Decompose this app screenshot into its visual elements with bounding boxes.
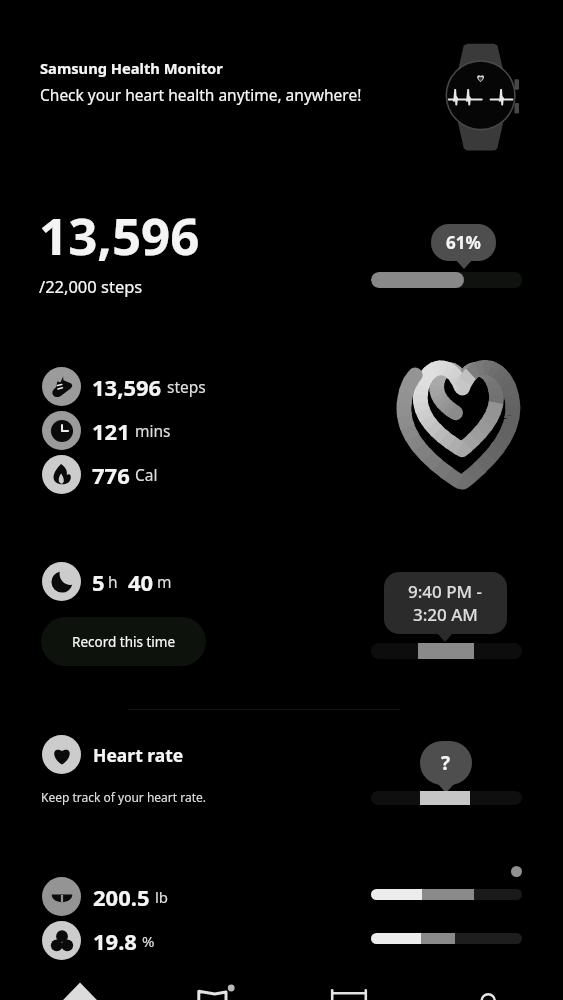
staticText: 19.8 [93, 926, 137, 956]
staticText: Check your heart health anytime, anywher… [40, 84, 362, 105]
staticText: 5 [92, 567, 105, 597]
button[interactable]: Browse [428, 960, 538, 1000]
button[interactable]: Together [159, 960, 269, 1000]
button[interactable]: Home [25, 960, 135, 1000]
staticText: lb [155, 887, 169, 907]
button[interactable]: Record this time [41, 617, 206, 666]
staticText: 13,596 [92, 372, 162, 402]
button[interactable]: 776 [42, 455, 158, 494]
staticText: 40 [128, 567, 154, 597]
staticText: ? [441, 750, 451, 776]
button[interactable]: 61% [431, 224, 496, 261]
staticText: /22,000 steps [39, 275, 143, 297]
staticText: 121 [92, 416, 130, 446]
staticText: steps [167, 376, 206, 397]
staticText: 200.5 [93, 882, 150, 912]
staticText: Heart rate [93, 743, 184, 767]
other: Galaxy Watch [428, 26, 536, 166]
staticText: 3:20 AM [413, 603, 478, 626]
staticText: mins [135, 420, 171, 441]
button[interactable]: ? [420, 741, 472, 785]
staticText: h [108, 571, 118, 592]
button[interactable]: 121 [42, 411, 171, 450]
staticText: m [157, 571, 172, 592]
staticText: 13,596 [39, 200, 200, 269]
button[interactable]: 13,596 [42, 367, 206, 406]
staticText: Cal [135, 464, 158, 485]
staticText: Samsung Health Monitor [40, 58, 223, 78]
staticText: 776 [92, 460, 130, 490]
staticText: 9:40 PM - [408, 580, 483, 603]
staticText: Keep track of your heart rate. [41, 789, 207, 805]
staticText: Record this time [72, 633, 176, 651]
staticText: % [142, 931, 155, 951]
button[interactable]: Fitness [294, 960, 404, 1000]
staticText: 61% [446, 231, 481, 254]
